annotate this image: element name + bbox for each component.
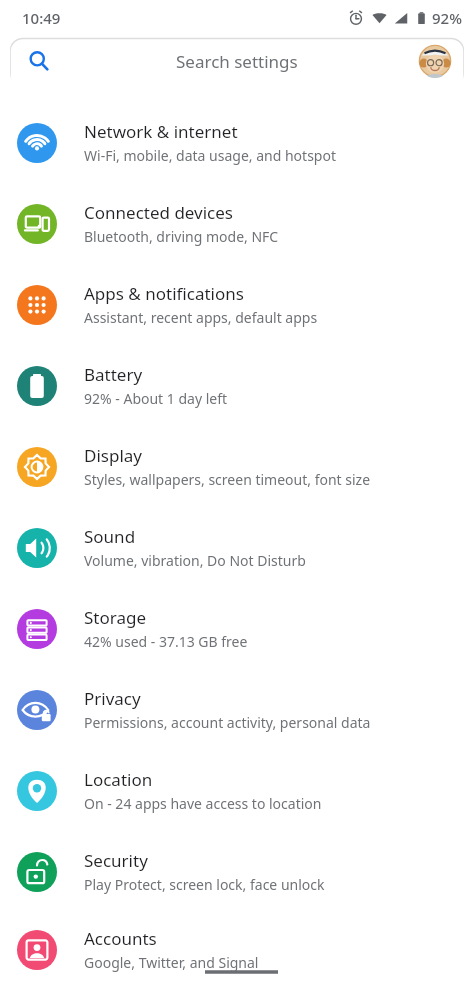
staticText: Storage — [84, 606, 147, 629]
staticText: Location — [84, 768, 153, 791]
button[interactable]: Accounts — [0, 912, 474, 987]
staticText: Privacy — [84, 687, 141, 710]
staticText: Play Protect, screen lock, face unlock — [84, 875, 325, 894]
staticText: Network & internet — [84, 120, 238, 143]
button[interactable]: Privacy — [0, 669, 474, 750]
staticText: Apps & notifications — [84, 282, 244, 305]
staticText: Styles, wallpapers, screen timeout, font… — [84, 470, 371, 489]
button[interactable]: Network & internet — [0, 102, 474, 183]
staticText: 92% - About 1 day left — [84, 389, 228, 408]
button[interactable]: Security — [0, 831, 474, 912]
staticText: Wi-Fi, mobile, data usage, and hotspot — [84, 146, 336, 165]
button[interactable]: Battery — [0, 345, 474, 426]
staticText: 92% — [432, 8, 462, 28]
button[interactable]: Search — [10, 36, 464, 86]
staticText: Permissions, account activity, personal … — [84, 713, 371, 732]
button[interactable]: Location — [0, 750, 474, 831]
staticText: Google, Twitter, and Signal — [84, 953, 259, 972]
button[interactable]: Sound — [0, 507, 474, 588]
other: Search — [28, 50, 50, 72]
staticText: Sound — [84, 525, 136, 548]
staticText: Connected devices — [84, 201, 234, 224]
staticText: Security — [84, 849, 148, 872]
button[interactable]: Apps & notifications — [0, 264, 474, 345]
staticText: Accounts — [84, 927, 157, 950]
staticText: Volume, vibration, Do Not Disturb — [84, 551, 306, 570]
staticText: 10:49 — [22, 8, 61, 28]
button[interactable]: Display — [0, 426, 474, 507]
staticText: Bluetooth, driving mode, NFC — [84, 227, 279, 246]
button[interactable]: Storage — [0, 588, 474, 669]
staticText: On - 24 apps have access to location — [84, 794, 322, 813]
button[interactable]: Connected devices — [0, 183, 474, 264]
staticText: Display — [84, 444, 142, 467]
staticText: 42% used - 37.13 GB free — [84, 632, 248, 651]
staticText: Battery — [84, 363, 143, 386]
staticText: Assistant, recent apps, default apps — [84, 308, 318, 327]
button[interactable]: Account — [418, 44, 452, 78]
staticText: Search settings — [176, 50, 298, 73]
